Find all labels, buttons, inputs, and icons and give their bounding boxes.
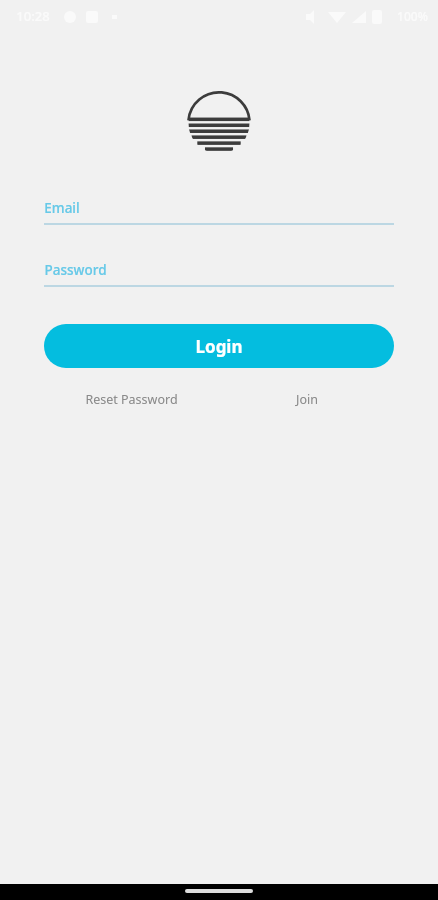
button[interactable]: Reset Password	[44, 385, 219, 413]
staticText: Reset Password	[85, 391, 178, 408]
staticText: Email	[44, 199, 80, 217]
staticText: Join	[296, 391, 318, 408]
button[interactable]: Email	[44, 199, 394, 225]
staticText: 100%	[397, 8, 428, 24]
staticText: Password	[44, 261, 107, 279]
button[interactable]: Password	[44, 261, 394, 287]
button[interactable]: Join	[219, 385, 394, 413]
staticText: 10:28	[16, 7, 50, 25]
button[interactable]: Login	[44, 324, 394, 368]
staticText: Login	[195, 335, 243, 358]
